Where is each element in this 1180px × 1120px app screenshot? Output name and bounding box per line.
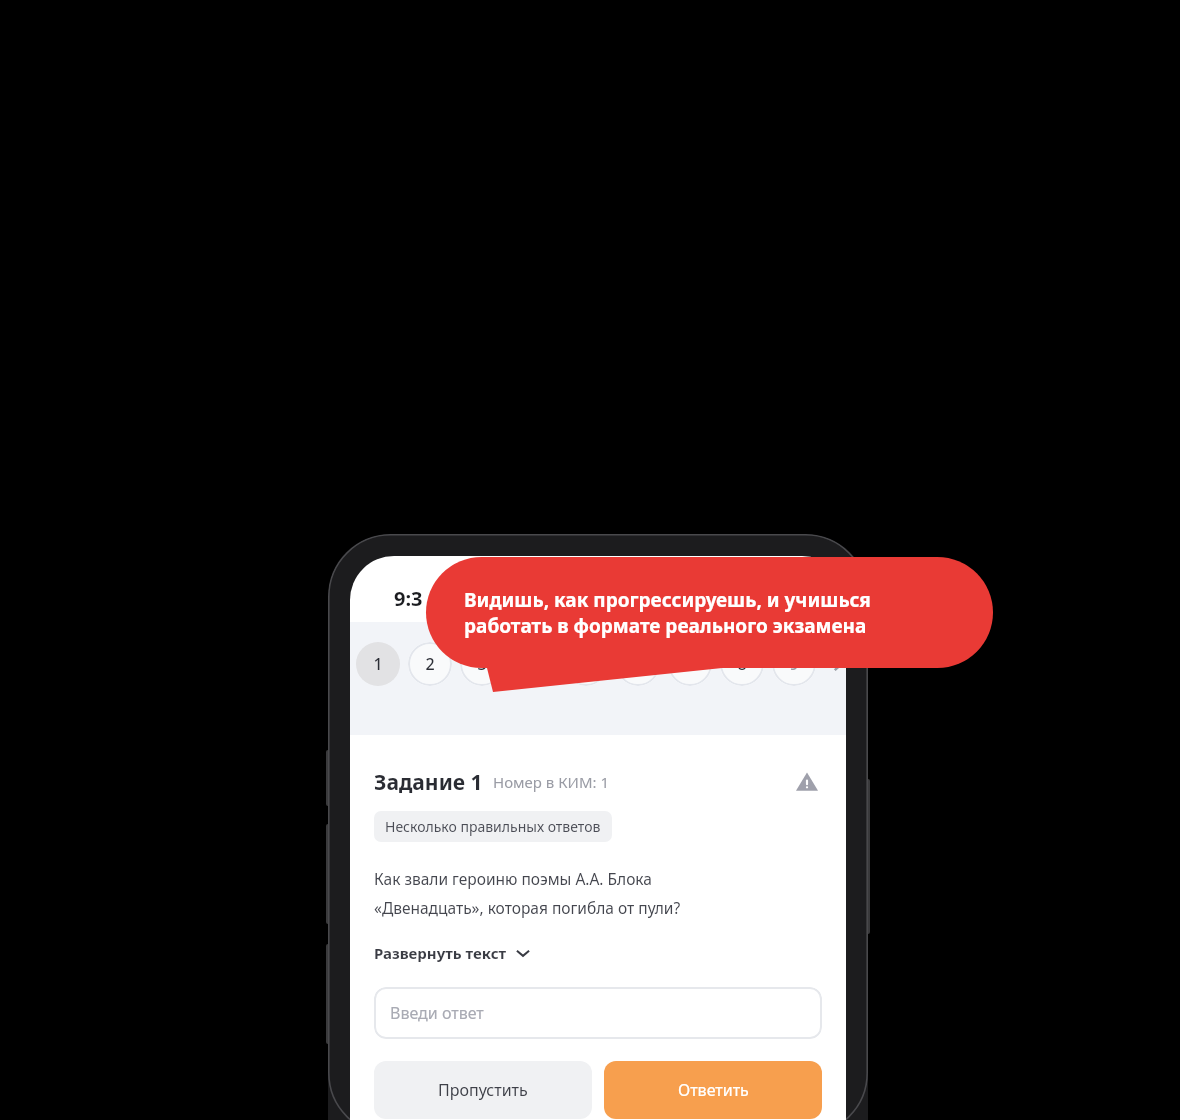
button[interactable]: Пропустить: [374, 1061, 592, 1119]
button[interactable]: 2: [408, 642, 452, 686]
button[interactable]: 1: [356, 642, 400, 686]
button[interactable]: 4: [512, 642, 556, 686]
staticText: 8: [737, 653, 747, 675]
staticText: Задание 1: [374, 768, 483, 797]
button[interactable]: Несколько правильных ответов: [374, 811, 612, 842]
button[interactable]: Next tasks: [824, 647, 846, 681]
staticText: Видишь, как прогрессируешь, и учишься: [464, 587, 871, 613]
staticText: 2: [425, 653, 435, 675]
staticText: Как звали героиню поэмы А.А. Блока «Двен…: [374, 868, 681, 918]
button[interactable]: Развернуть текст: [374, 943, 531, 963]
button[interactable]: 3: [460, 642, 504, 686]
staticText: Номер в КИМ: 1: [493, 772, 610, 792]
staticText: 9:3: [394, 585, 423, 612]
staticText: Введи ответ: [390, 1002, 484, 1024]
staticText: 9: [789, 653, 799, 675]
staticText: Развернуть текст: [374, 943, 507, 963]
staticText: Несколько правильных ответов: [385, 817, 601, 836]
staticText: 3: [477, 653, 487, 675]
button[interactable]: 6: [616, 642, 660, 686]
staticText: работать в формате реального экзамена: [464, 613, 867, 639]
button[interactable]: Введи ответ: [374, 987, 822, 1039]
button[interactable]: 5: [564, 642, 608, 686]
staticText: 7: [685, 653, 695, 675]
button[interactable]: 7: [668, 642, 712, 686]
button[interactable]: 8: [720, 642, 764, 686]
staticText: Пропустить: [438, 1079, 528, 1101]
button[interactable]: Видишь, как прогрессируешь, и учишься: [426, 557, 993, 668]
staticText: 1: [373, 653, 383, 675]
staticText: Ответить: [678, 1079, 749, 1101]
button[interactable]: 9: [772, 642, 816, 686]
button[interactable]: Ответить: [604, 1061, 822, 1119]
button[interactable]: Report an issue: [792, 767, 822, 797]
